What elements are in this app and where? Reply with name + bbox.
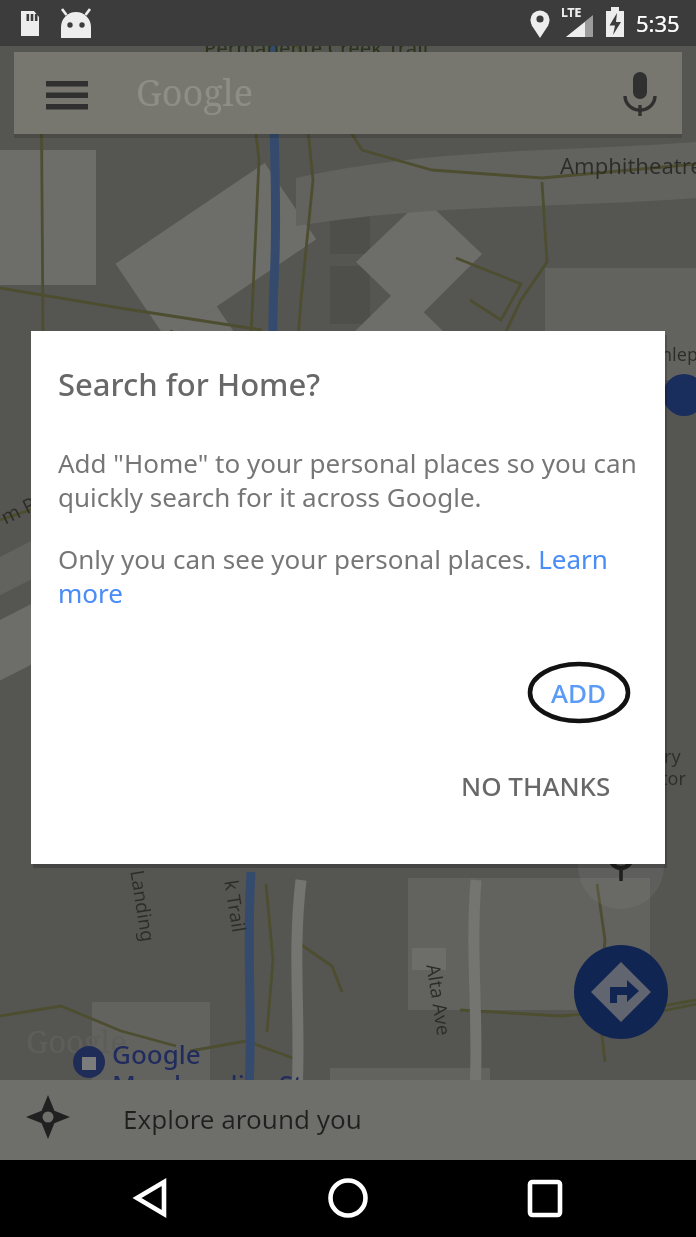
button[interactable]: Recents bbox=[505, 1160, 585, 1237]
button[interactable]: Menu bbox=[30, 62, 106, 124]
button[interactable]: My location bbox=[579, 824, 663, 908]
button[interactable] bbox=[58, 566, 158, 608]
button[interactable] bbox=[14, 52, 682, 134]
button[interactable]: Voice search bbox=[612, 62, 670, 124]
button[interactable] bbox=[500, 534, 612, 574]
button[interactable]: Home bbox=[308, 1160, 388, 1237]
button[interactable]: Back bbox=[110, 1160, 190, 1237]
button[interactable] bbox=[0, 1080, 696, 1160]
button[interactable] bbox=[462, 757, 627, 815]
button[interactable]: Directions bbox=[574, 945, 668, 1039]
button[interactable] bbox=[527, 661, 631, 723]
